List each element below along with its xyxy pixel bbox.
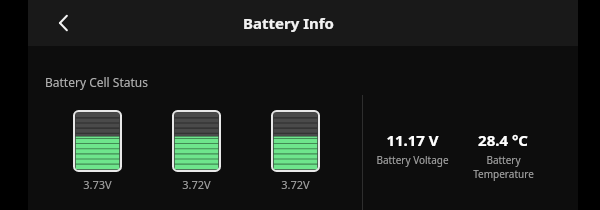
staticText: Battery Voltage xyxy=(376,153,449,167)
staticText: 3.72V xyxy=(182,177,211,192)
staticText: 11.17 V xyxy=(386,130,439,150)
button[interactable]: 3.73V xyxy=(73,110,122,192)
staticText: Temperature xyxy=(473,167,534,181)
button[interactable]: 3.72V xyxy=(271,110,320,192)
button[interactable]: Back xyxy=(42,1,86,45)
staticText: Battery xyxy=(486,153,521,167)
staticText: 3.73V xyxy=(83,177,112,192)
button[interactable]: 28.4 °C xyxy=(448,130,558,181)
staticText: 3.72V xyxy=(281,177,310,192)
button[interactable]: 3.72V xyxy=(172,110,221,192)
staticText: Battery Cell Status xyxy=(45,74,148,90)
staticText: 28.4 °C xyxy=(478,130,528,150)
staticText: Battery Info xyxy=(243,13,334,33)
button[interactable]: 11.17 V xyxy=(357,130,467,167)
